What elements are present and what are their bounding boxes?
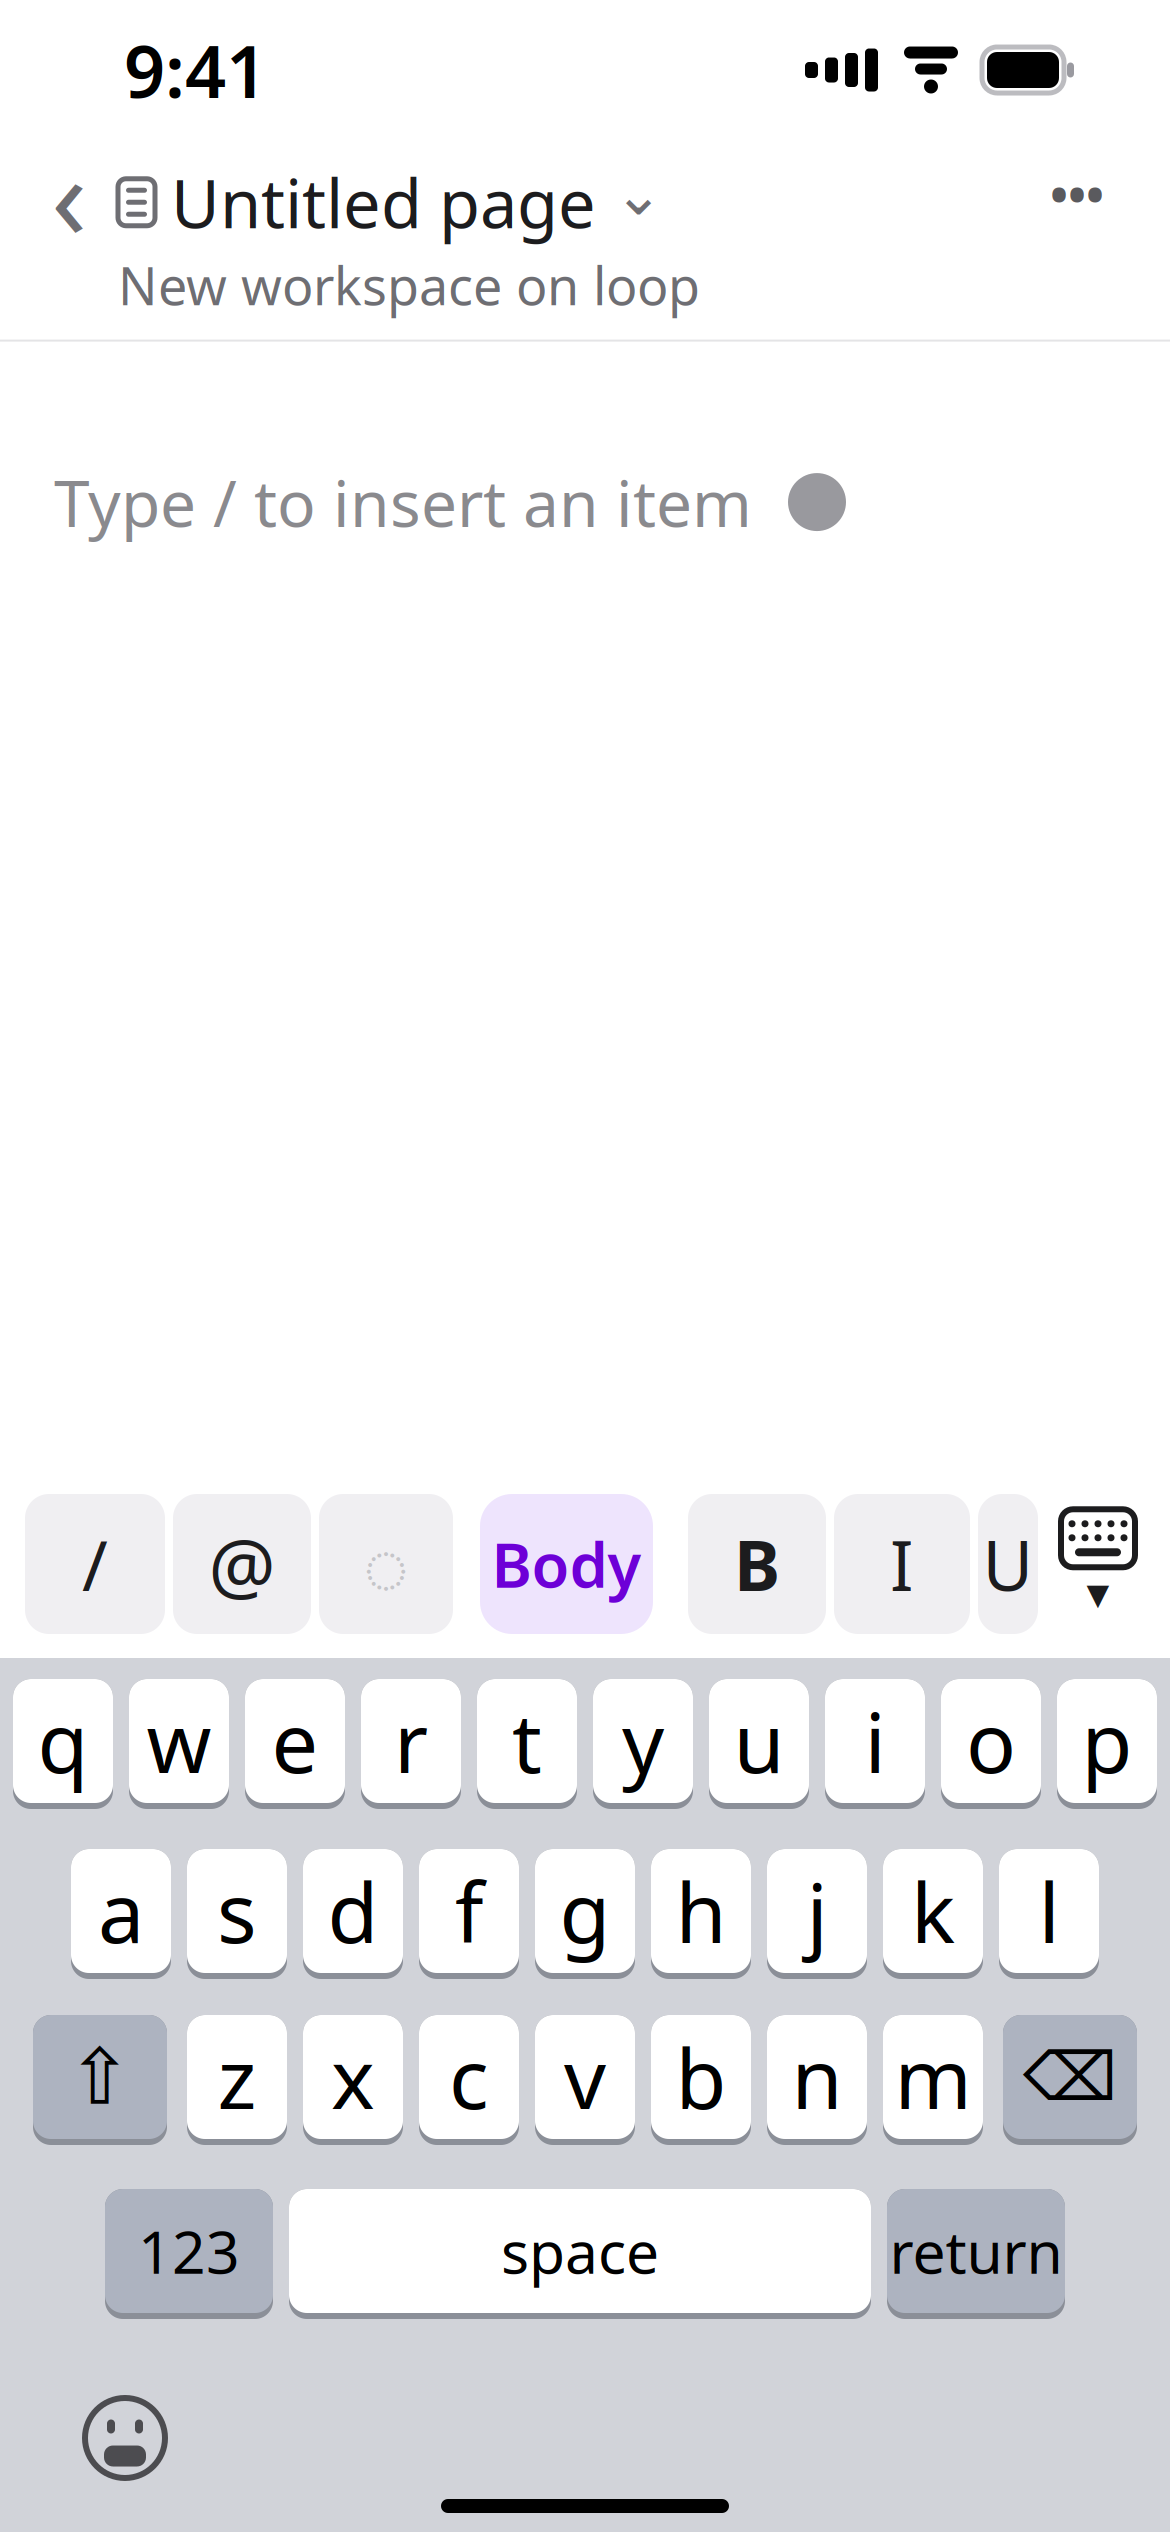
staticText: k <box>911 1856 955 1966</box>
button[interactable]: Body <box>480 1494 653 1634</box>
staticText: y <box>622 1686 664 1796</box>
staticText: j <box>806 1856 827 1966</box>
staticText: I <box>890 1518 914 1610</box>
staticText: return <box>889 2212 1062 2290</box>
button[interactable]: l <box>999 1849 1099 1979</box>
button[interactable]: More options <box>1028 140 1126 248</box>
button[interactable]: x <box>303 2015 403 2145</box>
staticText: x <box>331 2022 375 2132</box>
staticText: ⇧ <box>67 2033 132 2121</box>
button[interactable]: c <box>419 2015 519 2145</box>
staticText: t <box>512 1686 542 1796</box>
button[interactable]: w <box>129 1679 229 1809</box>
staticText: 9:41 <box>124 22 267 118</box>
staticText: / <box>82 1518 108 1610</box>
button[interactable]: u <box>709 1679 809 1809</box>
staticText: Untitled page <box>171 158 596 246</box>
staticText: i <box>864 1686 885 1796</box>
button[interactable]: p <box>1057 1679 1157 1809</box>
staticText: h <box>675 1856 726 1966</box>
button[interactable]: U <box>978 1494 1038 1634</box>
staticText: ◌ <box>363 1513 409 1615</box>
button[interactable]: B <box>688 1494 826 1634</box>
staticText: Body <box>491 1523 641 1605</box>
staticText: b <box>675 2022 726 2132</box>
button[interactable]: n <box>767 2015 867 2145</box>
staticText: l <box>1038 1856 1059 1966</box>
button[interactable]: i <box>825 1679 925 1809</box>
staticText: space <box>501 2212 659 2290</box>
button[interactable]: / <box>25 1494 165 1634</box>
button[interactable]: @ <box>173 1494 311 1634</box>
staticText: B <box>734 1518 780 1610</box>
button[interactable]: k <box>883 1849 983 1979</box>
staticText: ••• <box>1050 162 1104 226</box>
staticText: New workspace on loop <box>118 250 700 320</box>
staticText: n <box>791 2022 842 2132</box>
staticText: o <box>966 1686 1016 1796</box>
button[interactable]: j <box>767 1849 867 1979</box>
button[interactable]: f <box>419 1849 519 1979</box>
button[interactable]: d <box>303 1849 403 1979</box>
staticText: e <box>271 1686 318 1796</box>
button[interactable]: space <box>289 2189 871 2319</box>
staticText: z <box>217 2022 256 2132</box>
staticText: f <box>455 1856 483 1966</box>
button[interactable]: m <box>883 2015 983 2145</box>
button[interactable]: Shift <box>33 2015 167 2145</box>
staticText: w <box>146 1686 211 1796</box>
button[interactable]: g <box>535 1849 635 1979</box>
staticText: c <box>449 2022 489 2132</box>
staticText: @ <box>208 1514 275 1614</box>
button[interactable]: z <box>187 2015 287 2145</box>
staticText: a <box>98 1856 144 1966</box>
button[interactable]: ◌ <box>319 1494 453 1634</box>
staticText: g <box>559 1856 610 1966</box>
button[interactable]: q <box>13 1679 113 1809</box>
button[interactable]: Hide keyboard <box>1056 1494 1140 1634</box>
staticText: ▾ <box>1086 1567 1109 1619</box>
staticText: s <box>217 1856 257 1966</box>
button[interactable]: v <box>535 2015 635 2145</box>
button[interactable]: Numbers <box>105 2189 273 2319</box>
button[interactable]: Emoji keyboard <box>72 2385 178 2491</box>
staticText: d <box>327 1856 378 1966</box>
button[interactable]: s <box>187 1849 287 1979</box>
button[interactable]: Delete <box>1003 2015 1137 2145</box>
staticText: r <box>394 1686 428 1796</box>
button[interactable]: t <box>477 1679 577 1809</box>
staticText: q <box>37 1686 88 1796</box>
button[interactable]: y <box>593 1679 693 1809</box>
staticText: ⌫ <box>1023 2039 1117 2115</box>
staticText: U <box>982 1518 1033 1610</box>
staticText: 123 <box>138 2212 240 2290</box>
button[interactable]: I <box>834 1494 970 1634</box>
button[interactable]: a <box>71 1849 171 1979</box>
staticText: u <box>733 1686 784 1796</box>
staticText: m <box>894 2022 971 2132</box>
button[interactable]: r <box>361 1679 461 1809</box>
button[interactable]: e <box>245 1679 345 1809</box>
staticText: v <box>564 2022 606 2132</box>
button[interactable]: Untitled page <box>118 158 663 246</box>
staticText: ⌄ <box>614 161 663 228</box>
button[interactable]: o <box>941 1679 1041 1809</box>
staticText: p <box>1081 1686 1132 1796</box>
button[interactable]: Back <box>20 140 118 248</box>
button[interactable]: h <box>651 1849 751 1979</box>
staticText: ‹ <box>51 116 87 272</box>
button[interactable]: Return <box>887 2189 1065 2319</box>
button[interactable]: b <box>651 2015 751 2145</box>
staticText: Type / to insert an item <box>54 460 752 545</box>
